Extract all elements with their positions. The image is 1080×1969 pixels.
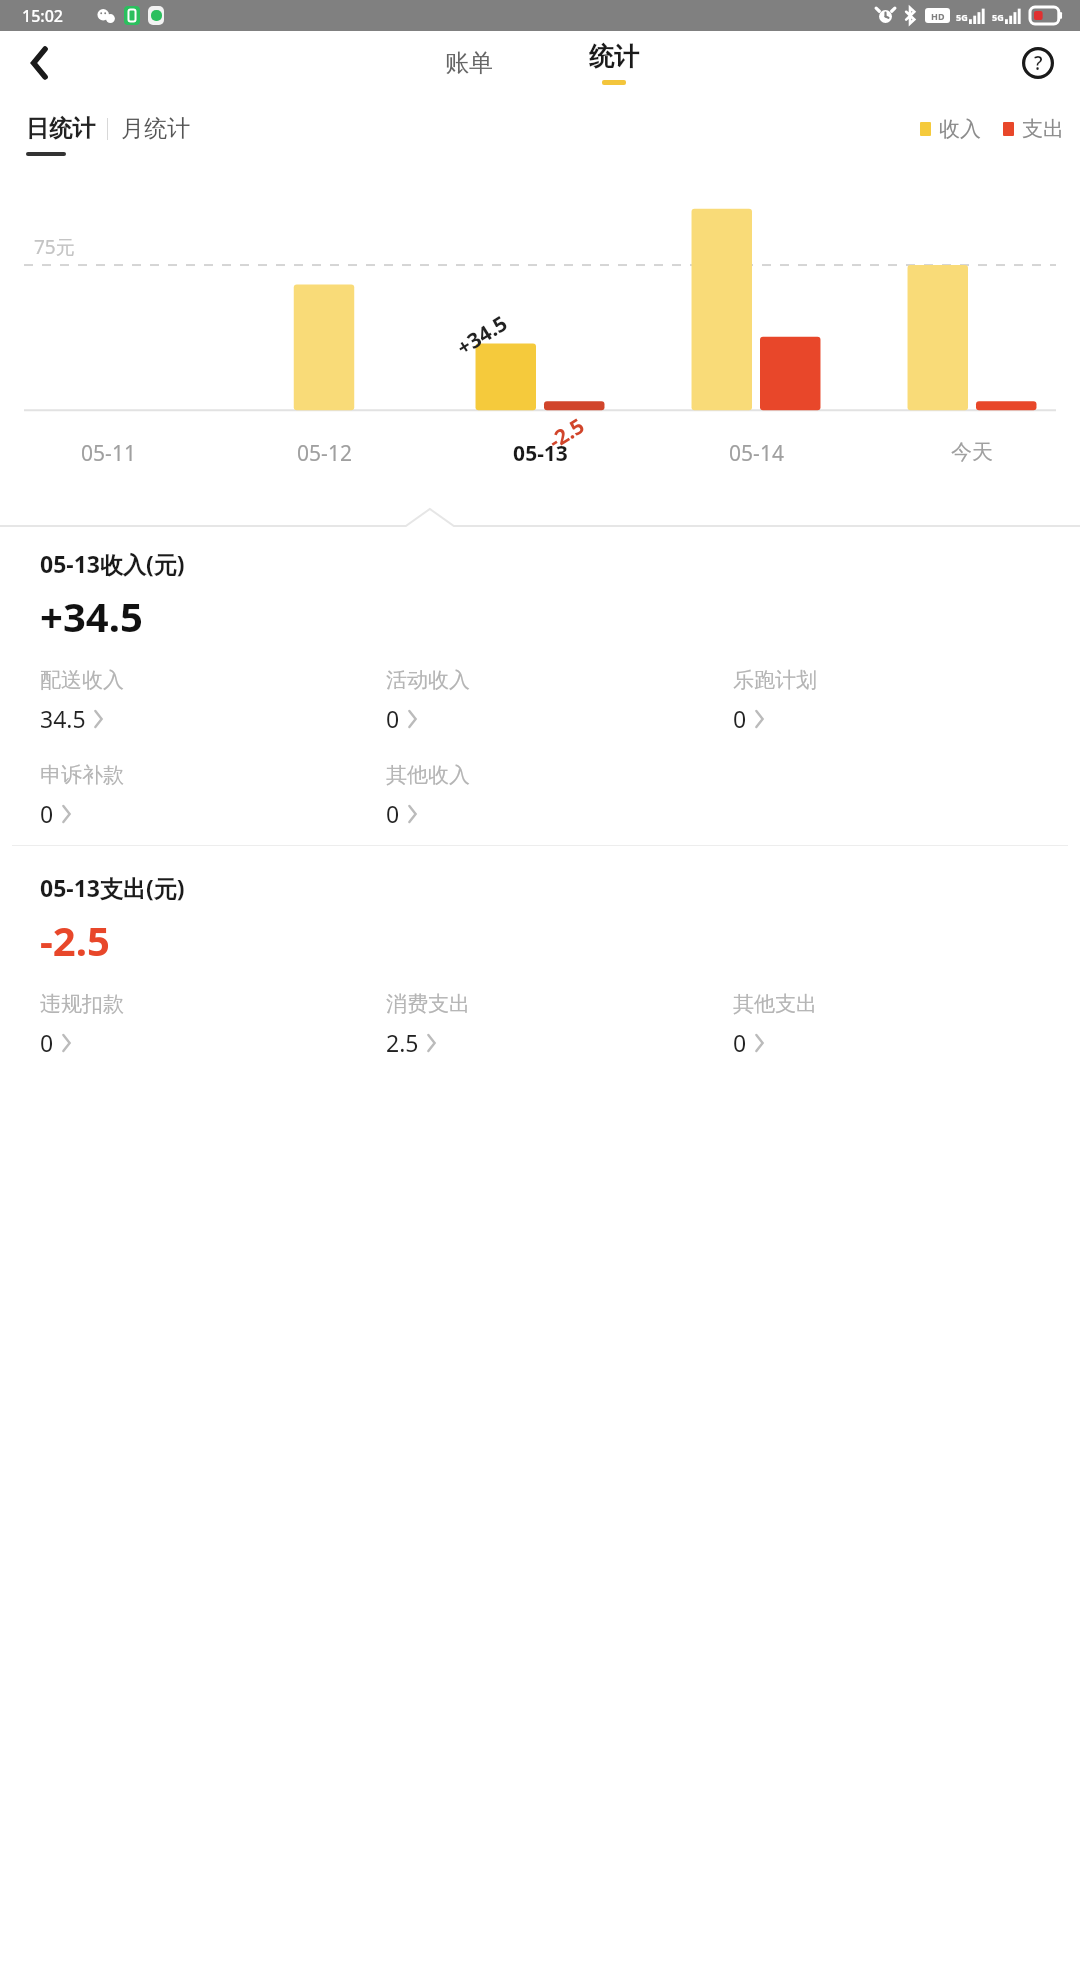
staticText: 乐跑计划 (733, 667, 817, 693)
staticText: 0 (40, 798, 54, 829)
button[interactable]: 乐跑计划 (733, 665, 1080, 736)
staticText: 05-13 (513, 439, 568, 468)
staticText: 日统计 (26, 114, 95, 143)
staticText: 15:02 (22, 5, 63, 27)
staticText: 收入 (939, 116, 981, 142)
staticText: 5G (956, 11, 968, 23)
staticText: +34.5 (451, 309, 513, 362)
staticText: 月统计 (121, 114, 190, 143)
button[interactable]: Help (1014, 39, 1062, 87)
button[interactable]: 消费支出 (386, 989, 733, 1060)
staticText: 2.5 (386, 1027, 419, 1058)
staticText: -2.5 (543, 411, 590, 456)
staticText: +34.5 (40, 589, 143, 643)
staticText: 违规扣款 (40, 991, 124, 1017)
button[interactable]: 05-14 (648, 439, 864, 468)
staticText: 活动收入 (386, 667, 470, 693)
staticText: 0 (40, 1027, 54, 1058)
staticText: -2.5 (40, 913, 110, 967)
staticText: 账单 (445, 48, 493, 78)
staticText: 5G (992, 11, 1004, 23)
staticText: 消费支出 (386, 991, 470, 1017)
button[interactable]: 申诉补款 (40, 760, 386, 831)
button[interactable]: 其他收入 (386, 760, 733, 831)
button[interactable]: 其他支出 (733, 989, 1080, 1060)
staticText: 今天 (951, 439, 993, 465)
button[interactable]: 统计 (567, 41, 661, 85)
staticText: 0 (733, 703, 747, 734)
button[interactable]: 05-11 (0, 439, 216, 468)
staticText: ? (1034, 50, 1043, 76)
staticText: 支出 (1022, 116, 1064, 142)
button[interactable]: 今天 (864, 439, 1080, 465)
staticText: 其他支出 (733, 991, 817, 1017)
staticText: 统计 (589, 41, 639, 72)
staticText: 75元 (34, 234, 75, 260)
button[interactable]: 账单 (419, 42, 519, 84)
button[interactable]: 配送收入 (40, 665, 386, 736)
staticText: 05-12 (297, 439, 352, 468)
staticText: 05-14 (729, 439, 784, 468)
staticText: 05-13支出(元) (40, 872, 185, 903)
button[interactable]: 活动收入 (386, 665, 733, 736)
button[interactable]: 05-12 (216, 439, 432, 468)
button[interactable]: 月统计 (108, 110, 203, 147)
staticText: 其他收入 (386, 762, 470, 788)
button[interactable]: 日统计 (14, 110, 107, 160)
staticText: 配送收入 (40, 667, 124, 693)
staticText: HD (931, 10, 945, 22)
staticText: 0 (733, 1027, 747, 1058)
button[interactable]: 05-13 (432, 439, 648, 468)
button[interactable]: 违规扣款 (40, 989, 386, 1060)
staticText: 05-13收入(元) (40, 548, 185, 579)
staticText: 申诉补款 (40, 762, 124, 788)
staticText: 0 (386, 703, 400, 734)
button[interactable]: Back (16, 39, 64, 87)
staticText: 05-11 (81, 439, 136, 468)
staticText: 0 (386, 798, 400, 829)
staticText: 34.5 (40, 703, 86, 734)
